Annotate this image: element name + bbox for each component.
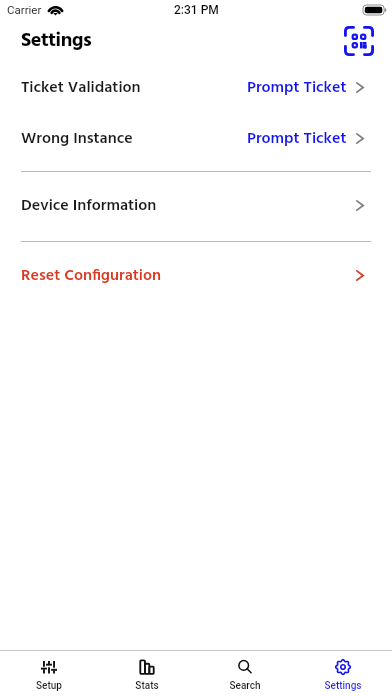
staticText: Prompt Ticket — [247, 75, 347, 101]
staticText: Settings — [21, 25, 92, 57]
staticText: Carrier — [7, 3, 42, 16]
staticText: Prompt Ticket — [247, 126, 347, 152]
button[interactable]: Scan QR code — [344, 26, 374, 56]
button[interactable]: Ticket Validation — [0, 62, 392, 113]
button[interactable]: Setup — [0, 659, 98, 692]
staticText: 2:31 PM — [174, 3, 219, 17]
staticText: Setup — [36, 680, 62, 692]
staticText: Device Information — [21, 193, 157, 219]
button[interactable]: Stats — [98, 659, 196, 692]
staticText: Reset Configuration — [21, 263, 162, 289]
staticText: Search — [229, 680, 261, 692]
staticText: Wrong Instance — [21, 126, 133, 152]
button[interactable]: Wrong Instance — [0, 113, 392, 164]
staticText: Settings — [324, 680, 362, 692]
button[interactable]: Search — [196, 659, 294, 692]
staticText: Stats — [135, 680, 159, 692]
button[interactable]: Settings — [294, 659, 392, 692]
button[interactable]: Reset Configuration — [0, 250, 392, 301]
button[interactable]: Device Information — [0, 180, 392, 231]
staticText: Ticket Validation — [21, 75, 141, 101]
